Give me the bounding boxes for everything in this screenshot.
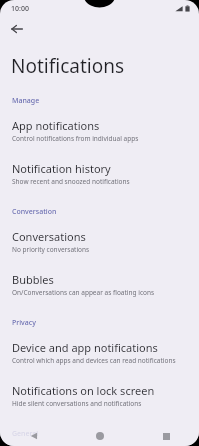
staticText: Bubbles	[12, 272, 54, 287]
staticText: Show recent and snoozed notifications	[12, 177, 130, 186]
staticText: Notifications on lock screen	[12, 383, 155, 398]
button[interactable]: Back	[5, 17, 29, 41]
staticText: Control notifications from individual ap…	[12, 134, 139, 143]
staticText: Hide silent conversations and notificati…	[12, 399, 142, 408]
button[interactable]: Home	[67, 426, 133, 446]
staticText: Device and app notifications	[12, 340, 158, 355]
button[interactable]: Device and app notifications	[0, 335, 199, 370]
staticText: Privacy	[12, 318, 36, 328]
staticText: Manage	[12, 96, 40, 106]
staticText: Control which apps and devices can read …	[12, 356, 176, 365]
button[interactable]: Bubbles	[0, 267, 199, 302]
staticText: 10:00	[11, 4, 29, 14]
staticText: No priority conversations	[12, 245, 90, 254]
staticText: Notification history	[12, 161, 111, 176]
button[interactable]: Conversations	[0, 224, 199, 259]
staticText: Conversation	[12, 207, 57, 217]
button[interactable]: Recent apps	[133, 426, 199, 446]
staticText: Conversations	[12, 229, 86, 244]
button[interactable]: Notification history	[0, 156, 199, 191]
button[interactable]: App notifications	[0, 113, 199, 148]
staticText: Notifications	[11, 53, 125, 79]
button[interactable]: Notifications on lock screen	[0, 378, 199, 413]
staticText: General	[12, 429, 39, 439]
button[interactable]: Back	[0, 426, 67, 446]
staticText: App notifications	[12, 118, 100, 133]
staticText: On/Conversations can appear as floating …	[12, 288, 155, 297]
